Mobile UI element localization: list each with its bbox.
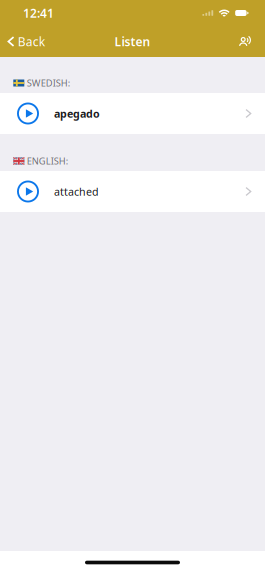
staticText: Back <box>18 33 45 49</box>
staticText: SWEDISH: <box>27 77 71 89</box>
button[interactable]: apegado <box>0 93 265 134</box>
staticText: attached <box>54 184 99 199</box>
button[interactable]: Listening options <box>239 26 265 57</box>
staticText: 12:41 <box>23 5 54 21</box>
button[interactable]: attached <box>0 171 265 212</box>
staticText: Listen <box>114 33 150 49</box>
button[interactable]: Back <box>0 26 45 57</box>
staticText: apegado <box>54 106 100 121</box>
staticText: ENGLISH: <box>27 155 69 167</box>
